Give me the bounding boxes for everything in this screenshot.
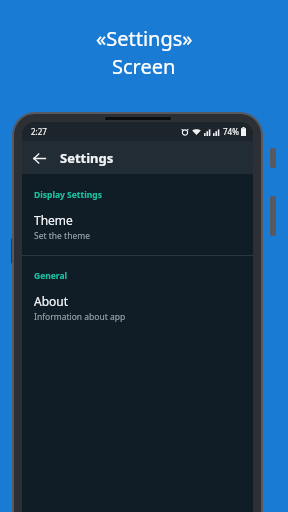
staticText: «Settings» — [96, 25, 193, 52]
button[interactable]: About — [22, 282, 253, 326]
staticText: Information about app — [34, 311, 126, 323]
button[interactable]: Theme — [22, 201, 253, 245]
staticText: About — [34, 293, 69, 309]
button[interactable]: Back — [27, 146, 51, 170]
staticText: 2:27 — [31, 126, 47, 137]
staticText: General — [34, 270, 68, 282]
staticText: Display Settings — [34, 189, 102, 201]
staticText: Settings — [60, 149, 114, 167]
staticText: Theme — [34, 212, 73, 228]
staticText: Set the theme — [34, 230, 90, 242]
staticText: Screen — [112, 53, 176, 80]
staticText: 74% — [223, 126, 239, 137]
